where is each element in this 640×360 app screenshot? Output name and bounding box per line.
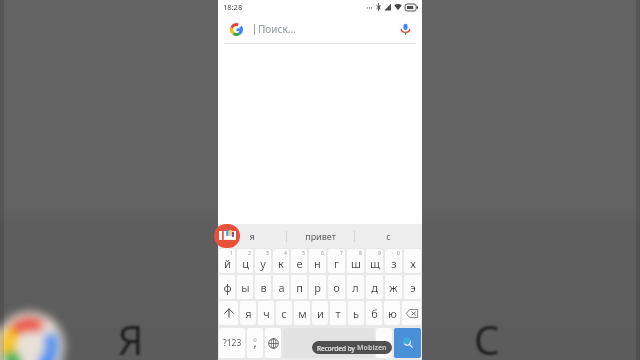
button[interactable]: 5 [291, 249, 307, 273]
staticText: а [278, 280, 285, 295]
button[interactable]: х [404, 249, 421, 273]
button[interactable]: ч [258, 301, 274, 325]
button[interactable]: с [355, 224, 422, 248]
staticText: ч [263, 306, 270, 321]
button[interactable]: б [366, 301, 382, 325]
staticText: щ [370, 256, 380, 271]
staticText: е [296, 256, 303, 271]
staticText: р [314, 280, 321, 295]
button[interactable]: ф [219, 275, 235, 299]
button[interactable]: ж [385, 275, 402, 299]
button[interactable]: о [328, 275, 345, 299]
staticText: ы [241, 280, 250, 295]
staticText: и [317, 306, 324, 321]
button[interactable]: и [312, 301, 328, 325]
staticText: т [335, 306, 341, 321]
staticText: 1 [230, 250, 233, 257]
button[interactable]: Search [394, 328, 421, 358]
button[interactable]: р [309, 275, 326, 299]
staticText: 3 [266, 250, 269, 257]
staticText: б [371, 306, 378, 321]
staticText: я [245, 306, 252, 321]
staticText: 0 [397, 250, 400, 257]
staticText: л [352, 280, 359, 295]
staticText: 7 [340, 250, 343, 257]
staticText: Поиск... [258, 22, 396, 36]
staticText: 9 [378, 250, 381, 257]
staticText: д [371, 280, 378, 295]
staticText: э [410, 280, 416, 295]
button[interactable]: л [347, 275, 364, 299]
staticText: 8 [359, 250, 362, 257]
button[interactable]: д [366, 275, 383, 299]
button[interactable]: ы [237, 275, 253, 299]
staticText: ?123 [223, 337, 242, 349]
button[interactable]: Period [376, 328, 392, 358]
button[interactable]: м [294, 301, 310, 325]
staticText: в [260, 280, 267, 295]
button[interactable]: в [255, 275, 271, 299]
button[interactable]: Shift [219, 301, 238, 325]
staticText: с [386, 230, 391, 242]
staticText: Я [118, 312, 144, 360]
staticText: ц [242, 256, 249, 271]
button[interactable]: ь [348, 301, 364, 325]
button[interactable]: 0 [385, 249, 402, 273]
button[interactable]: с [276, 301, 292, 325]
staticText: п [296, 280, 303, 295]
staticText: й [224, 256, 231, 271]
staticText: ь [353, 306, 359, 321]
button[interactable]: Google [226, 19, 246, 39]
button[interactable]: 1 [219, 249, 235, 273]
button[interactable]: э [404, 275, 421, 299]
staticText: у [260, 256, 266, 271]
button[interactable]: 4 [273, 249, 289, 273]
staticText: 5 [302, 250, 305, 257]
button[interactable]: Space [283, 328, 374, 358]
staticText: ж [389, 280, 398, 295]
button[interactable]: Change language [265, 328, 281, 358]
button[interactable]: п [291, 275, 307, 299]
button[interactable]: 9 [366, 249, 383, 273]
button[interactable]: я [218, 224, 286, 248]
staticText: м [298, 306, 307, 321]
button[interactable]: Backspace [402, 301, 421, 325]
staticText: с [281, 306, 287, 321]
button[interactable]: ю [384, 301, 400, 325]
button[interactable]: я [240, 301, 256, 325]
staticText: г [334, 256, 339, 271]
staticText: С [474, 312, 500, 360]
staticText: х [410, 256, 416, 271]
staticText: 18:28 [223, 2, 243, 12]
button[interactable]: а [273, 275, 289, 299]
staticText: 4 [284, 250, 287, 257]
staticText: 6 [321, 250, 324, 257]
button[interactable]: 2 [237, 249, 253, 273]
button[interactable]: Voice search [396, 20, 414, 38]
staticText: ю [388, 306, 397, 321]
staticText: ф [223, 280, 232, 295]
button[interactable]: 3 [255, 249, 271, 273]
staticText: 2 [248, 250, 251, 257]
button[interactable]: ?123 [219, 328, 245, 358]
staticText: з [391, 256, 397, 271]
staticText: Mobizen [357, 343, 387, 353]
staticText: о [333, 280, 340, 295]
button[interactable]: 8 [347, 249, 364, 273]
button[interactable]: привет [287, 224, 354, 248]
staticText: я [249, 230, 255, 242]
staticText: привет [305, 230, 336, 242]
staticText: ш [351, 256, 361, 271]
button[interactable]: 7 [328, 249, 345, 273]
button[interactable]: Comma [247, 328, 263, 358]
staticText: н [314, 256, 321, 271]
staticText: Recorded by [317, 344, 357, 353]
staticText: к [278, 256, 284, 271]
button[interactable]: 6 [309, 249, 326, 273]
button[interactable]: т [330, 301, 346, 325]
